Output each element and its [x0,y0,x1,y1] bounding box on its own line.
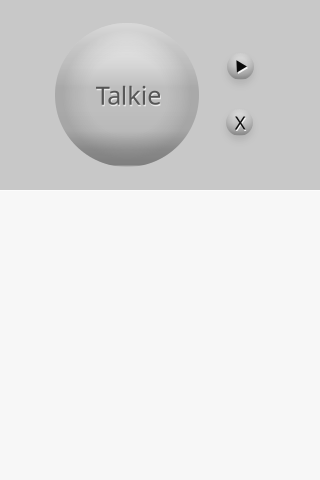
button[interactable]: Talkie [55,23,199,167]
staticText: Talkie [96,80,162,113]
button[interactable]: Stop [226,109,253,136]
button[interactable]: Play [227,53,254,80]
staticText: X [235,110,246,135]
staticText: Talkie [96,78,161,112]
staticText: X [236,111,247,136]
